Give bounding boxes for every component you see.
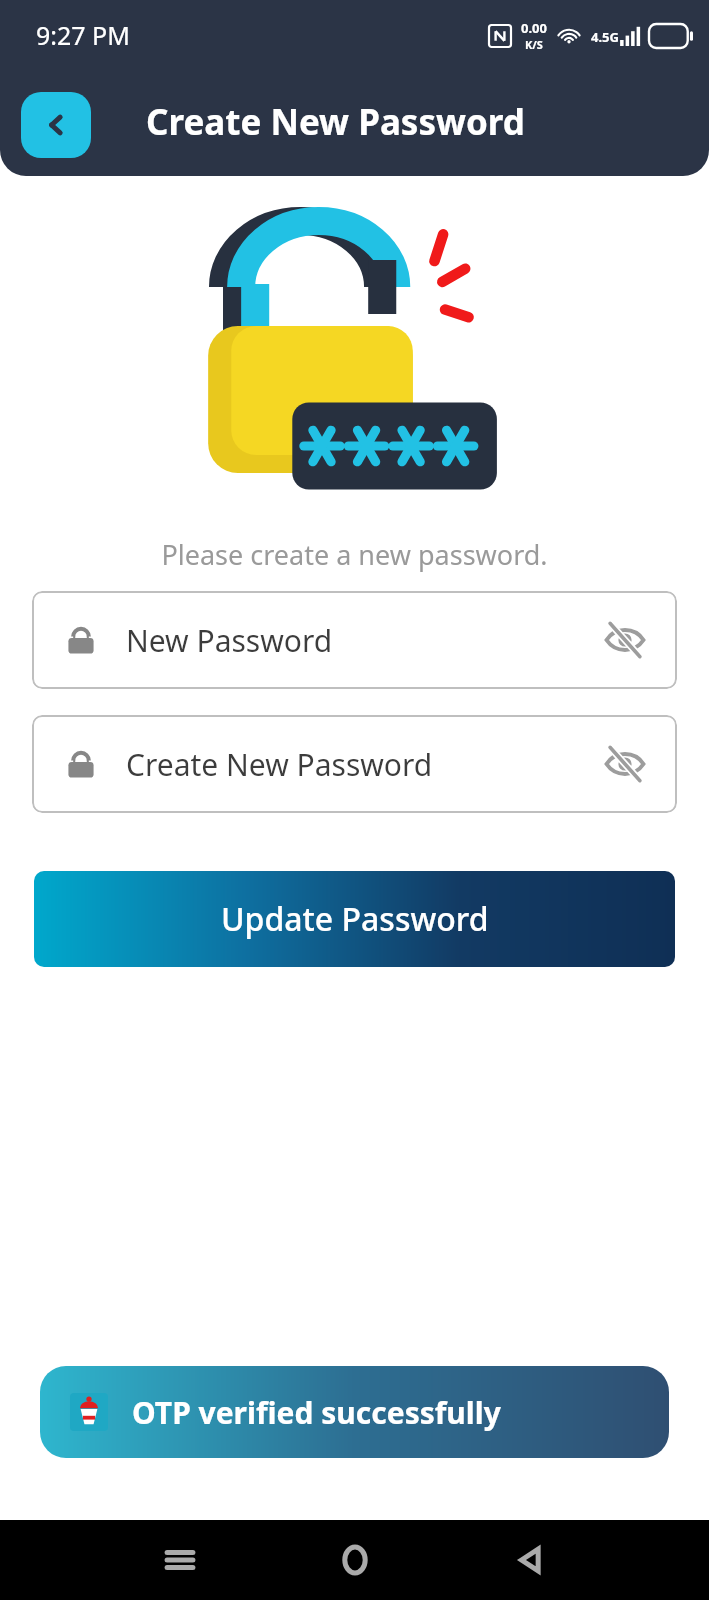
staticText: Create New Password	[126, 744, 433, 785]
button[interactable]: OTP verified successfully	[40, 1366, 669, 1458]
staticText: Update Password	[221, 897, 489, 941]
button[interactable]: Toggle password visibility	[603, 618, 647, 662]
button[interactable]: Recents	[163, 1543, 197, 1577]
staticText: 0.00	[521, 19, 547, 37]
button[interactable]: New Password	[32, 591, 677, 689]
staticText: 4.5G	[591, 28, 619, 46]
button[interactable]: Back	[513, 1543, 547, 1577]
staticText: 9:27 PM	[36, 18, 130, 52]
button[interactable]: Update Password	[34, 871, 675, 967]
staticText: K/S	[525, 37, 543, 52]
button[interactable]: Back	[21, 92, 91, 158]
button[interactable]: Home	[338, 1543, 372, 1577]
staticText: New Password	[126, 620, 333, 661]
staticText: Create New Password	[146, 98, 525, 146]
staticText: Please create a new password.	[0, 536, 709, 573]
button[interactable]: Create New Password	[32, 715, 677, 813]
button[interactable]: Toggle password visibility	[603, 742, 647, 786]
staticText: OTP verified successfully	[132, 1392, 501, 1433]
